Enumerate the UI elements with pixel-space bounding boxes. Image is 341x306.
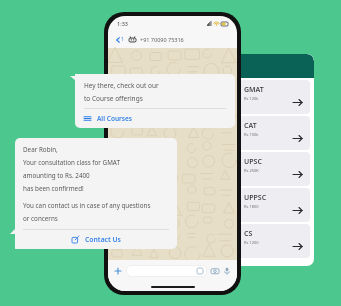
staticText: +91 70090 75316 — [140, 36, 184, 43]
other: Open UPSC — [293, 170, 302, 179]
button[interactable]: CAT — [238, 116, 310, 150]
staticText: amounting to Rs. 2400 — [23, 171, 90, 180]
staticText: CS — [244, 229, 253, 239]
button[interactable]: Back — [115, 37, 121, 43]
button[interactable] — [126, 265, 207, 277]
staticText: or concerns — [23, 214, 58, 223]
button[interactable]: GMAT — [238, 80, 310, 114]
staticText: Rs 120k — [244, 96, 259, 101]
button[interactable]: UPPSC — [238, 188, 310, 222]
staticText: has been confirmed! — [23, 184, 84, 193]
button[interactable]: CS — [238, 224, 310, 258]
button[interactable]: Attach — [114, 267, 122, 275]
staticText: Rs 250K — [244, 168, 259, 173]
staticText: CAT — [244, 121, 257, 131]
button[interactable]: Camera — [211, 267, 219, 275]
staticText: GMAT — [244, 85, 264, 95]
other: Open UPPSC — [293, 206, 302, 215]
button[interactable]: All Courses — [84, 114, 226, 123]
other: Open GMAT — [293, 98, 302, 107]
staticText: Dear Robin, — [23, 145, 58, 154]
staticText: Your consultation class for GMAT — [23, 158, 120, 167]
button[interactable]: UPSC — [238, 152, 310, 186]
staticText: 1 — [121, 36, 124, 43]
other: Open CAT — [293, 134, 302, 143]
staticText: You can contact us in case of any questi… — [23, 201, 151, 210]
staticText: 1:33 — [117, 20, 128, 27]
staticText: to Course offerings — [84, 94, 143, 103]
other: Open CS — [293, 242, 302, 251]
staticText: Hey there, check out our — [84, 81, 159, 90]
button[interactable]: Voice message — [223, 267, 231, 275]
staticText: All Courses — [97, 114, 133, 123]
staticText: UPSC — [244, 157, 262, 167]
staticText: Contact Us — [85, 235, 121, 244]
staticText: Rs 1200 — [244, 240, 259, 245]
staticText: UPPSC — [244, 193, 267, 203]
staticText: Rs 1800 — [244, 204, 259, 209]
button[interactable]: Contact Us — [23, 235, 169, 244]
staticText: Rs 100k — [244, 132, 259, 137]
